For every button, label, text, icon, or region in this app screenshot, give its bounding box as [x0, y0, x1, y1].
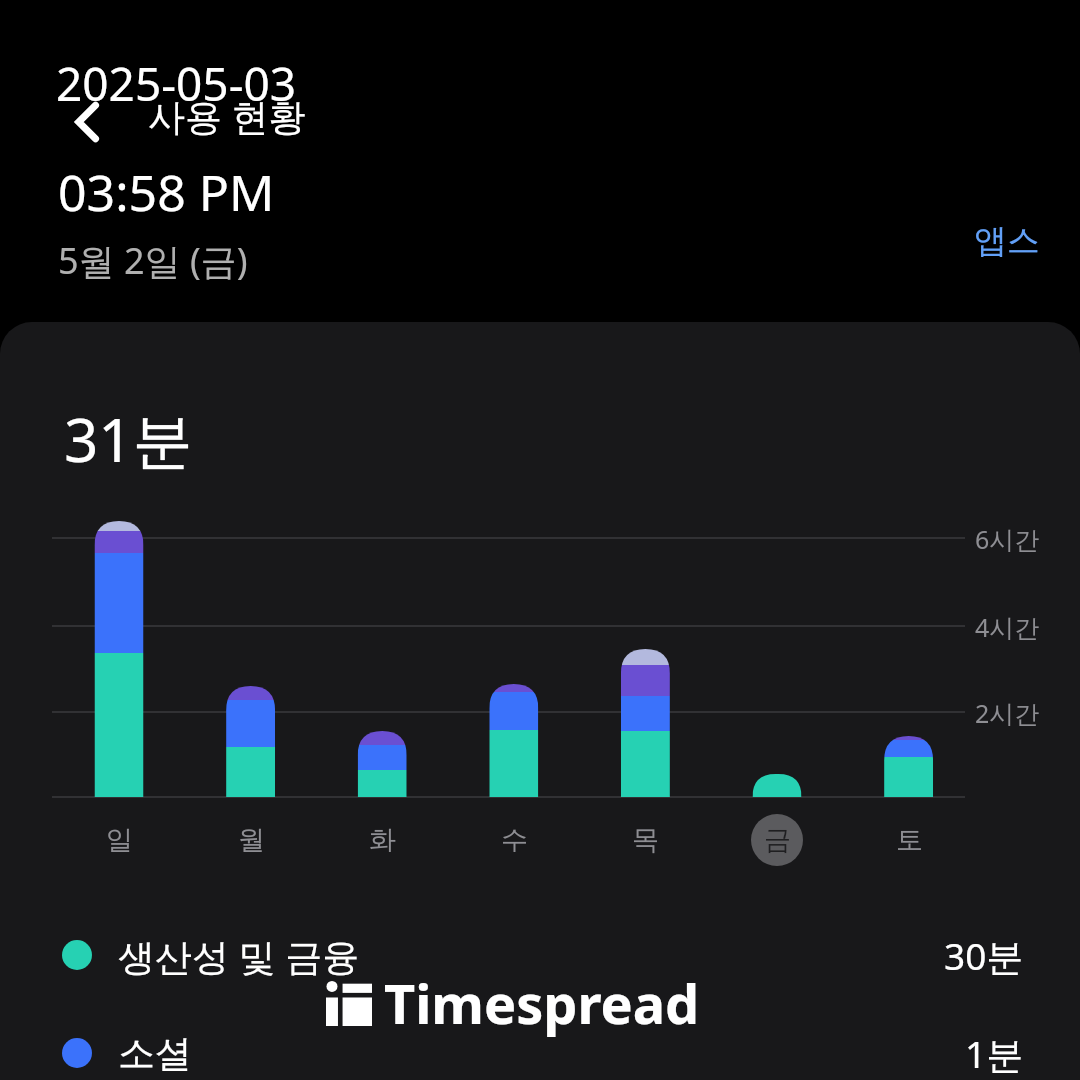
- staticText: 소셜: [118, 1030, 192, 1077]
- staticText: Timespread: [384, 966, 700, 1040]
- staticText: 2025-05-03: [56, 52, 297, 115]
- staticText: 금: [764, 823, 791, 857]
- staticText: 31분: [64, 398, 193, 480]
- staticText: 생산성 및 금융: [118, 930, 360, 981]
- staticText: 월: [238, 823, 265, 857]
- button[interactable]: 소셜: [0, 1022, 1080, 1080]
- button[interactable]: 앱스: [960, 212, 1054, 270]
- button[interactable]: 수: [488, 814, 540, 866]
- button[interactable]: 월: [225, 814, 277, 866]
- staticText: 4시간: [975, 610, 1040, 644]
- button[interactable]: 토: [883, 814, 935, 866]
- staticText: 5월 2일 (금): [58, 236, 248, 285]
- staticText: 화: [369, 823, 396, 857]
- button[interactable]: 목: [619, 814, 671, 866]
- staticText: 사용 현황: [148, 90, 306, 141]
- staticText: 토: [896, 823, 923, 857]
- staticText: 수: [501, 823, 528, 857]
- staticText: 03:58 PM: [58, 158, 275, 226]
- button[interactable]: 화: [356, 814, 408, 866]
- staticText: 목: [632, 823, 659, 857]
- staticText: 6시간: [975, 522, 1040, 556]
- staticText: 1분: [965, 1028, 1024, 1079]
- staticText: 30분: [944, 930, 1024, 981]
- button[interactable]: 생산성 및 금융: [0, 924, 1080, 986]
- button[interactable]: 일: [93, 814, 145, 866]
- staticText: 앱스: [974, 220, 1040, 262]
- button[interactable]: Back: [50, 84, 126, 160]
- staticText: 2시간: [975, 696, 1040, 730]
- staticText: 일: [106, 823, 133, 857]
- button[interactable]: 금: [751, 814, 803, 866]
